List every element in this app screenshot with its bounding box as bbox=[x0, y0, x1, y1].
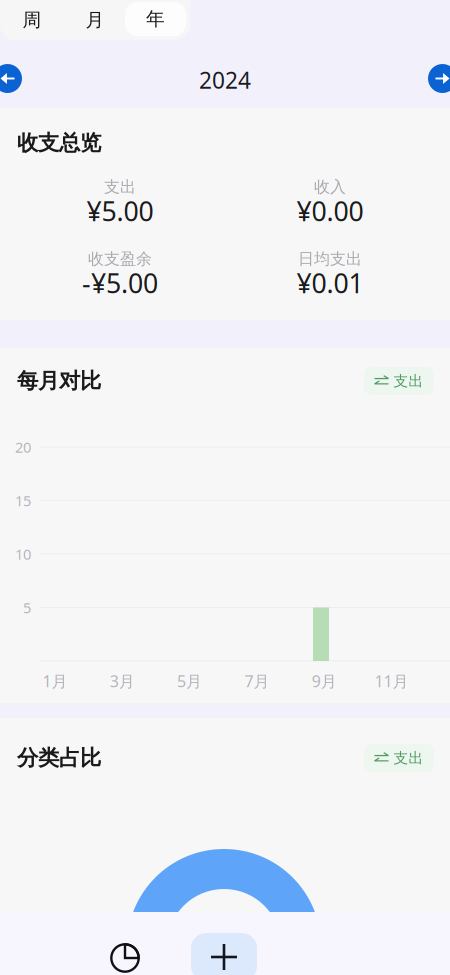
button[interactable]: Previous year bbox=[0, 64, 22, 93]
staticText: 20 bbox=[15, 437, 31, 457]
button[interactable]: 月 bbox=[64, 3, 126, 37]
staticText: 11月 bbox=[374, 670, 408, 692]
staticText: 支出 bbox=[104, 177, 136, 197]
staticText: 年 bbox=[146, 7, 165, 30]
button[interactable]: 支出 bbox=[364, 744, 434, 772]
staticText: 周 bbox=[22, 8, 41, 31]
staticText: 5 bbox=[23, 598, 31, 617]
staticText: 7月 bbox=[244, 670, 269, 692]
staticText: 15 bbox=[15, 491, 31, 510]
staticText: 收支总览 bbox=[17, 130, 101, 156]
button[interactable]: 周 bbox=[1, 3, 63, 37]
staticText: 收支盈余 bbox=[88, 249, 152, 269]
button[interactable]: Statistics bbox=[97, 935, 153, 975]
staticText: 2024 bbox=[199, 65, 251, 95]
staticText: 5月 bbox=[177, 670, 202, 692]
staticText: -¥5.00 bbox=[82, 265, 158, 301]
staticText: 支出 bbox=[393, 749, 423, 767]
staticText: 日均支出 bbox=[298, 249, 362, 269]
staticText: 1月 bbox=[42, 670, 67, 692]
staticText: 支出 bbox=[393, 372, 423, 390]
button[interactable]: 支出 bbox=[364, 367, 434, 395]
staticText: 月 bbox=[85, 8, 104, 31]
staticText: 分类占比 bbox=[17, 745, 101, 771]
staticText: ¥0.00 bbox=[296, 193, 363, 229]
button[interactable]: 年 bbox=[125, 2, 186, 36]
staticText: 每月对比 bbox=[17, 368, 101, 394]
staticText: 9月 bbox=[312, 670, 337, 692]
staticText: 10 bbox=[15, 544, 31, 564]
staticText: 3月 bbox=[110, 670, 135, 692]
staticText: ¥0.01 bbox=[296, 265, 363, 301]
staticText: 收入 bbox=[314, 177, 346, 197]
button[interactable]: Add record bbox=[191, 933, 257, 975]
button[interactable]: Next year bbox=[428, 64, 450, 93]
staticText: ¥5.00 bbox=[86, 193, 153, 229]
